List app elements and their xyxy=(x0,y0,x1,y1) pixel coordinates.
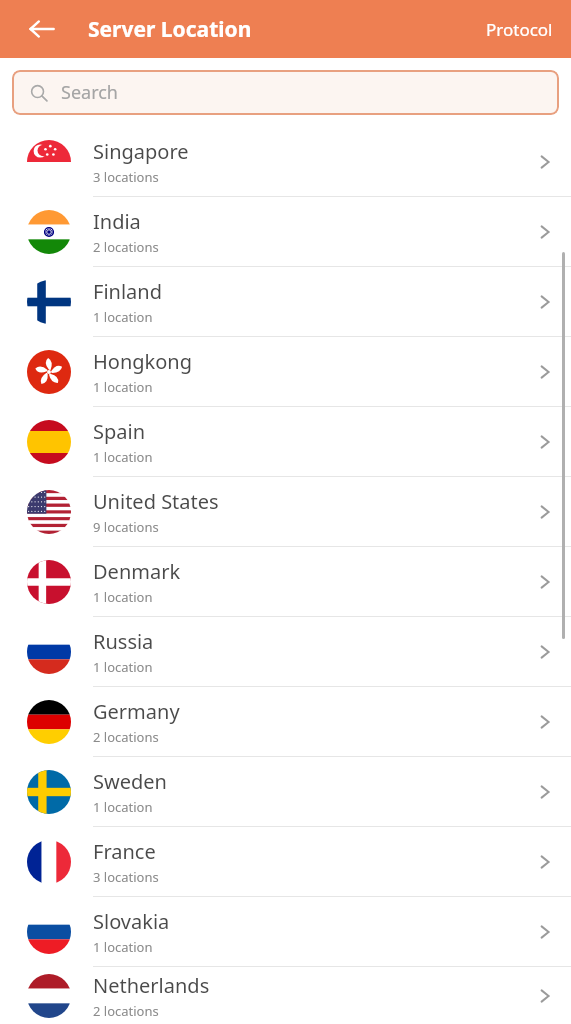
button[interactable]: Netherlands xyxy=(0,967,571,1024)
button[interactable]: Denmark xyxy=(0,547,571,617)
staticText: 2 locations xyxy=(93,238,159,256)
staticText: 1 location xyxy=(93,938,153,956)
staticText: 1 location xyxy=(93,588,153,606)
button[interactable]: Russia xyxy=(0,617,571,687)
staticText: Sweden xyxy=(93,768,167,795)
staticText: Hongkong xyxy=(93,348,193,375)
staticText: Protocol xyxy=(486,18,553,41)
staticText: 1 location xyxy=(93,308,153,326)
staticText: 1 location xyxy=(93,798,153,816)
staticText: 9 locations xyxy=(93,518,159,536)
button[interactable]: France xyxy=(0,827,571,897)
staticText: 1 location xyxy=(93,378,153,396)
staticText: 3 locations xyxy=(93,168,159,186)
staticText: Germany xyxy=(93,698,180,725)
button[interactable]: Germany xyxy=(0,687,571,757)
button[interactable]: India xyxy=(0,197,571,267)
staticText: 1 location xyxy=(93,658,153,676)
staticText: United States xyxy=(93,488,219,515)
staticText: Netherlands xyxy=(93,972,210,999)
staticText: Slovakia xyxy=(93,908,170,935)
staticText: France xyxy=(93,838,156,865)
staticText: 1 location xyxy=(93,448,153,466)
staticText: Server Location xyxy=(88,15,252,44)
staticText: 3 locations xyxy=(93,868,159,886)
button[interactable]: Hongkong xyxy=(0,337,571,407)
staticText: Search xyxy=(61,80,118,105)
button[interactable]: Singapore xyxy=(0,127,571,197)
staticText: 2 locations xyxy=(93,1002,159,1020)
button[interactable]: United States xyxy=(0,477,571,547)
button[interactable]: Slovakia xyxy=(0,897,571,967)
button[interactable]: Back xyxy=(22,9,62,49)
staticText: Finland xyxy=(93,278,162,305)
button[interactable]: Finland xyxy=(0,267,571,337)
staticText: India xyxy=(93,208,141,235)
staticText: Spain xyxy=(93,418,146,445)
staticText: Denmark xyxy=(93,558,181,585)
button[interactable]: Spain xyxy=(0,407,571,477)
button[interactable]: Sweden xyxy=(0,757,571,827)
button[interactable]: Protocol xyxy=(468,8,571,51)
button[interactable]: Search xyxy=(12,70,559,115)
staticText: 2 locations xyxy=(93,728,159,746)
staticText: Singapore xyxy=(93,138,189,165)
staticText: Russia xyxy=(93,628,154,655)
